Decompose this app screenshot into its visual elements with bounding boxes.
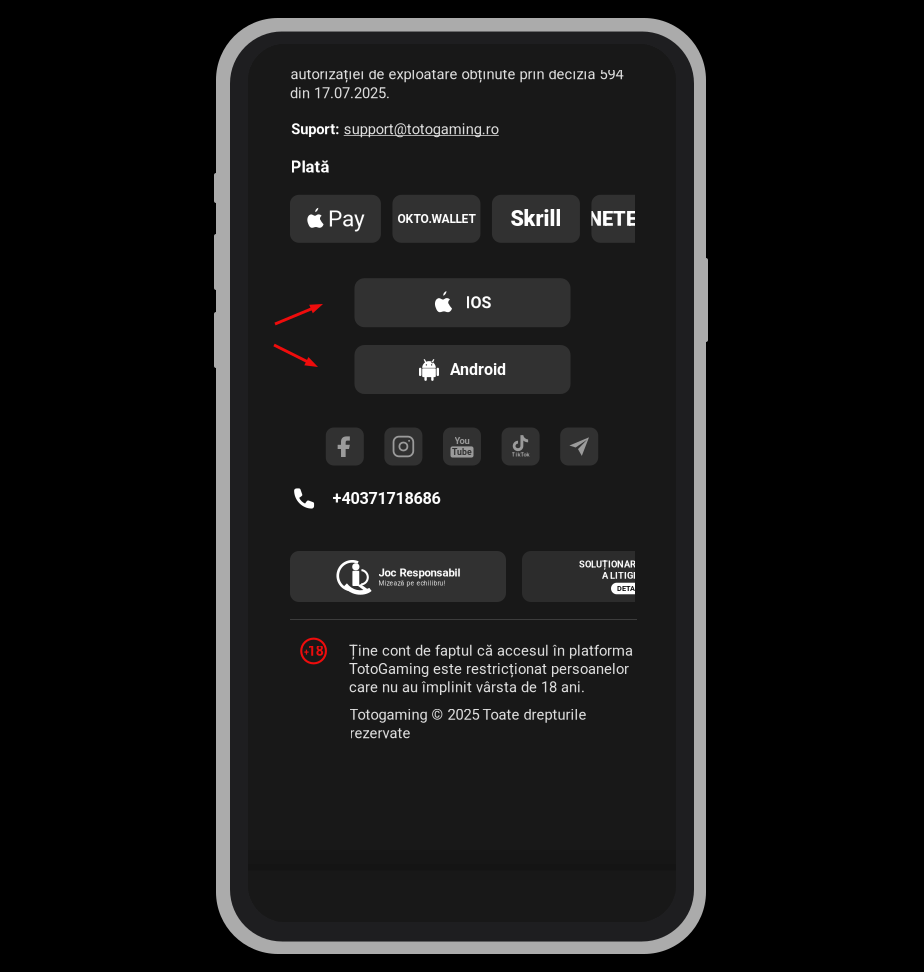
staticText: Ține cont de faptul că accesul în platfo… — [349, 642, 633, 696]
button[interactable]: TikTok — [502, 427, 540, 465]
button[interactable]: Instagram — [384, 427, 422, 465]
staticText: din 17.07.2025. — [290, 85, 390, 102]
staticText: Mizează pe echilibru! — [378, 579, 445, 587]
button[interactable]: SOLUȚIONAREA ALTERNATIVĂ — [522, 551, 738, 602]
staticText: TikTok — [512, 451, 530, 458]
staticText: NETELLER — [588, 207, 683, 230]
staticText: A LITIGIILOR — [602, 570, 656, 581]
staticText: DETALII — [617, 584, 643, 593]
button[interactable]: Facebook — [326, 427, 364, 465]
button[interactable]: YouTube — [443, 427, 481, 465]
staticText: Joc Responsabil — [378, 566, 460, 579]
staticText: Skrill — [510, 206, 561, 231]
button[interactable]: Joc Responsabil — [290, 551, 506, 602]
staticText: Pay — [328, 205, 365, 232]
staticText: Plată — [290, 157, 329, 177]
staticText: Tube — [452, 447, 472, 457]
staticText: You — [454, 435, 469, 446]
staticText: + — [304, 647, 309, 658]
staticText: autorizației de exploatare obținute prin… — [290, 66, 623, 83]
staticText: OKTO.WALLET — [397, 212, 475, 226]
button[interactable]: OKTO.WALLET — [392, 195, 480, 243]
button[interactable]: Android — [354, 345, 570, 394]
button[interactable]: Skrill — [492, 195, 580, 243]
button[interactable]: IOS — [354, 278, 570, 327]
staticText: +40371718686 — [332, 489, 440, 508]
staticText: Totogaming © 2025 Toate drepturile rezer… — [349, 706, 586, 742]
staticText: SOLUȚIONAREA ALTERNATIVĂ — [579, 559, 710, 570]
button[interactable]: Telegram — [560, 427, 598, 465]
staticText: support@totogaming.ro — [344, 121, 499, 138]
button[interactable]: +40371718686 — [293, 485, 440, 511]
staticText: Android — [450, 360, 506, 379]
button[interactable]: NETELLER — [591, 195, 679, 243]
button[interactable]: support@totogaming.ro — [344, 121, 499, 138]
staticText: Suport: — [291, 121, 339, 138]
staticText: 18 — [308, 643, 324, 659]
staticText: IOS — [465, 293, 491, 312]
button[interactable]: Pay — [290, 195, 381, 243]
